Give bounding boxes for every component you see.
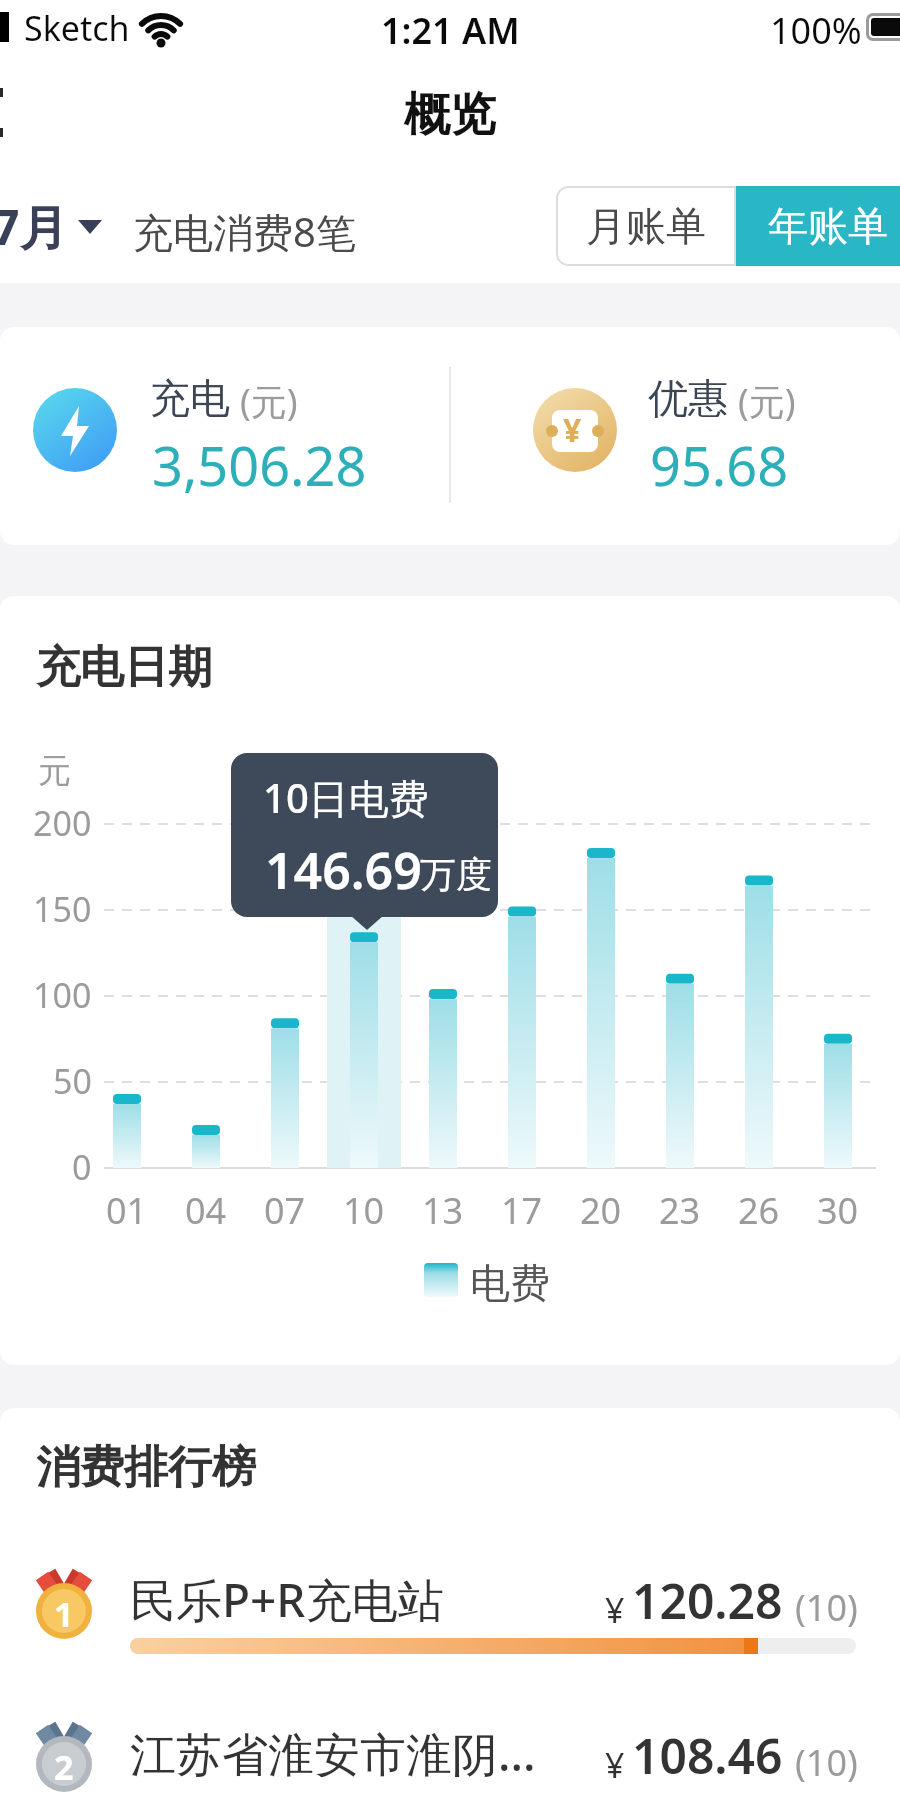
staticText: 江苏省淮安市淮阴... bbox=[130, 1722, 536, 1785]
staticText: 20 bbox=[580, 1186, 622, 1230]
staticText: 30 bbox=[817, 1186, 859, 1230]
staticText: 3,506.28 bbox=[152, 428, 367, 502]
staticText: 50 bbox=[53, 1058, 92, 1102]
staticText: (10) bbox=[795, 1738, 858, 1787]
staticText: 10日电费 bbox=[263, 770, 429, 825]
staticText: 95.68 bbox=[650, 428, 789, 502]
staticText: 17 bbox=[501, 1186, 543, 1230]
staticText: 07 bbox=[264, 1186, 306, 1230]
button[interactable] bbox=[20, 1712, 880, 1800]
staticText: (元) bbox=[738, 377, 796, 426]
staticText: 优惠 bbox=[648, 373, 728, 423]
staticText: 120.28 bbox=[632, 1568, 783, 1633]
staticText: 04 bbox=[185, 1186, 227, 1230]
staticText: 月账单 bbox=[586, 201, 706, 251]
staticText: 0 bbox=[72, 1144, 92, 1188]
staticText: ¥ bbox=[605, 1742, 625, 1788]
staticText: 元 bbox=[38, 750, 71, 792]
staticText: 23 bbox=[659, 1186, 701, 1230]
staticText: 充电日期 bbox=[36, 640, 212, 695]
staticText: 民乐P+R充电站 bbox=[130, 1568, 444, 1631]
staticText: 10 bbox=[343, 1186, 385, 1230]
staticText: 2 bbox=[54, 1744, 74, 1784]
staticText: 01 bbox=[106, 1186, 148, 1230]
staticText: 200 bbox=[33, 800, 92, 844]
staticText: 13 bbox=[422, 1186, 464, 1230]
button[interactable]: 7月 bbox=[0, 194, 102, 260]
staticText: 万度 bbox=[420, 852, 492, 897]
staticText: 108.46 bbox=[632, 1723, 783, 1788]
staticText: 概览 bbox=[404, 86, 496, 144]
staticText: ¥ bbox=[563, 408, 582, 452]
staticText: 146.69 bbox=[265, 836, 422, 904]
staticText: 26 bbox=[738, 1186, 780, 1230]
button[interactable] bbox=[20, 1560, 880, 1670]
staticText: (10) bbox=[795, 1583, 858, 1632]
staticText: 1:21 AM bbox=[381, 6, 520, 55]
staticText: 150 bbox=[33, 886, 92, 930]
staticText: 充电消费8笔 bbox=[133, 204, 356, 259]
staticText: Sketch bbox=[24, 5, 130, 51]
staticText: 100% bbox=[770, 6, 862, 55]
button[interactable]: 月账单 bbox=[556, 186, 736, 266]
staticText: 充电 bbox=[150, 373, 230, 423]
staticText: ¥ bbox=[605, 1587, 625, 1633]
staticText: 消费排行榜 bbox=[36, 1440, 256, 1495]
staticText: 7月 bbox=[0, 194, 68, 260]
staticText: 100 bbox=[33, 972, 92, 1016]
staticText: 电费 bbox=[470, 1258, 550, 1308]
staticText: 1 bbox=[54, 1591, 74, 1631]
staticText: (元) bbox=[240, 377, 298, 426]
button[interactable]: 年账单 bbox=[736, 186, 900, 266]
staticText: 年账单 bbox=[768, 201, 888, 251]
